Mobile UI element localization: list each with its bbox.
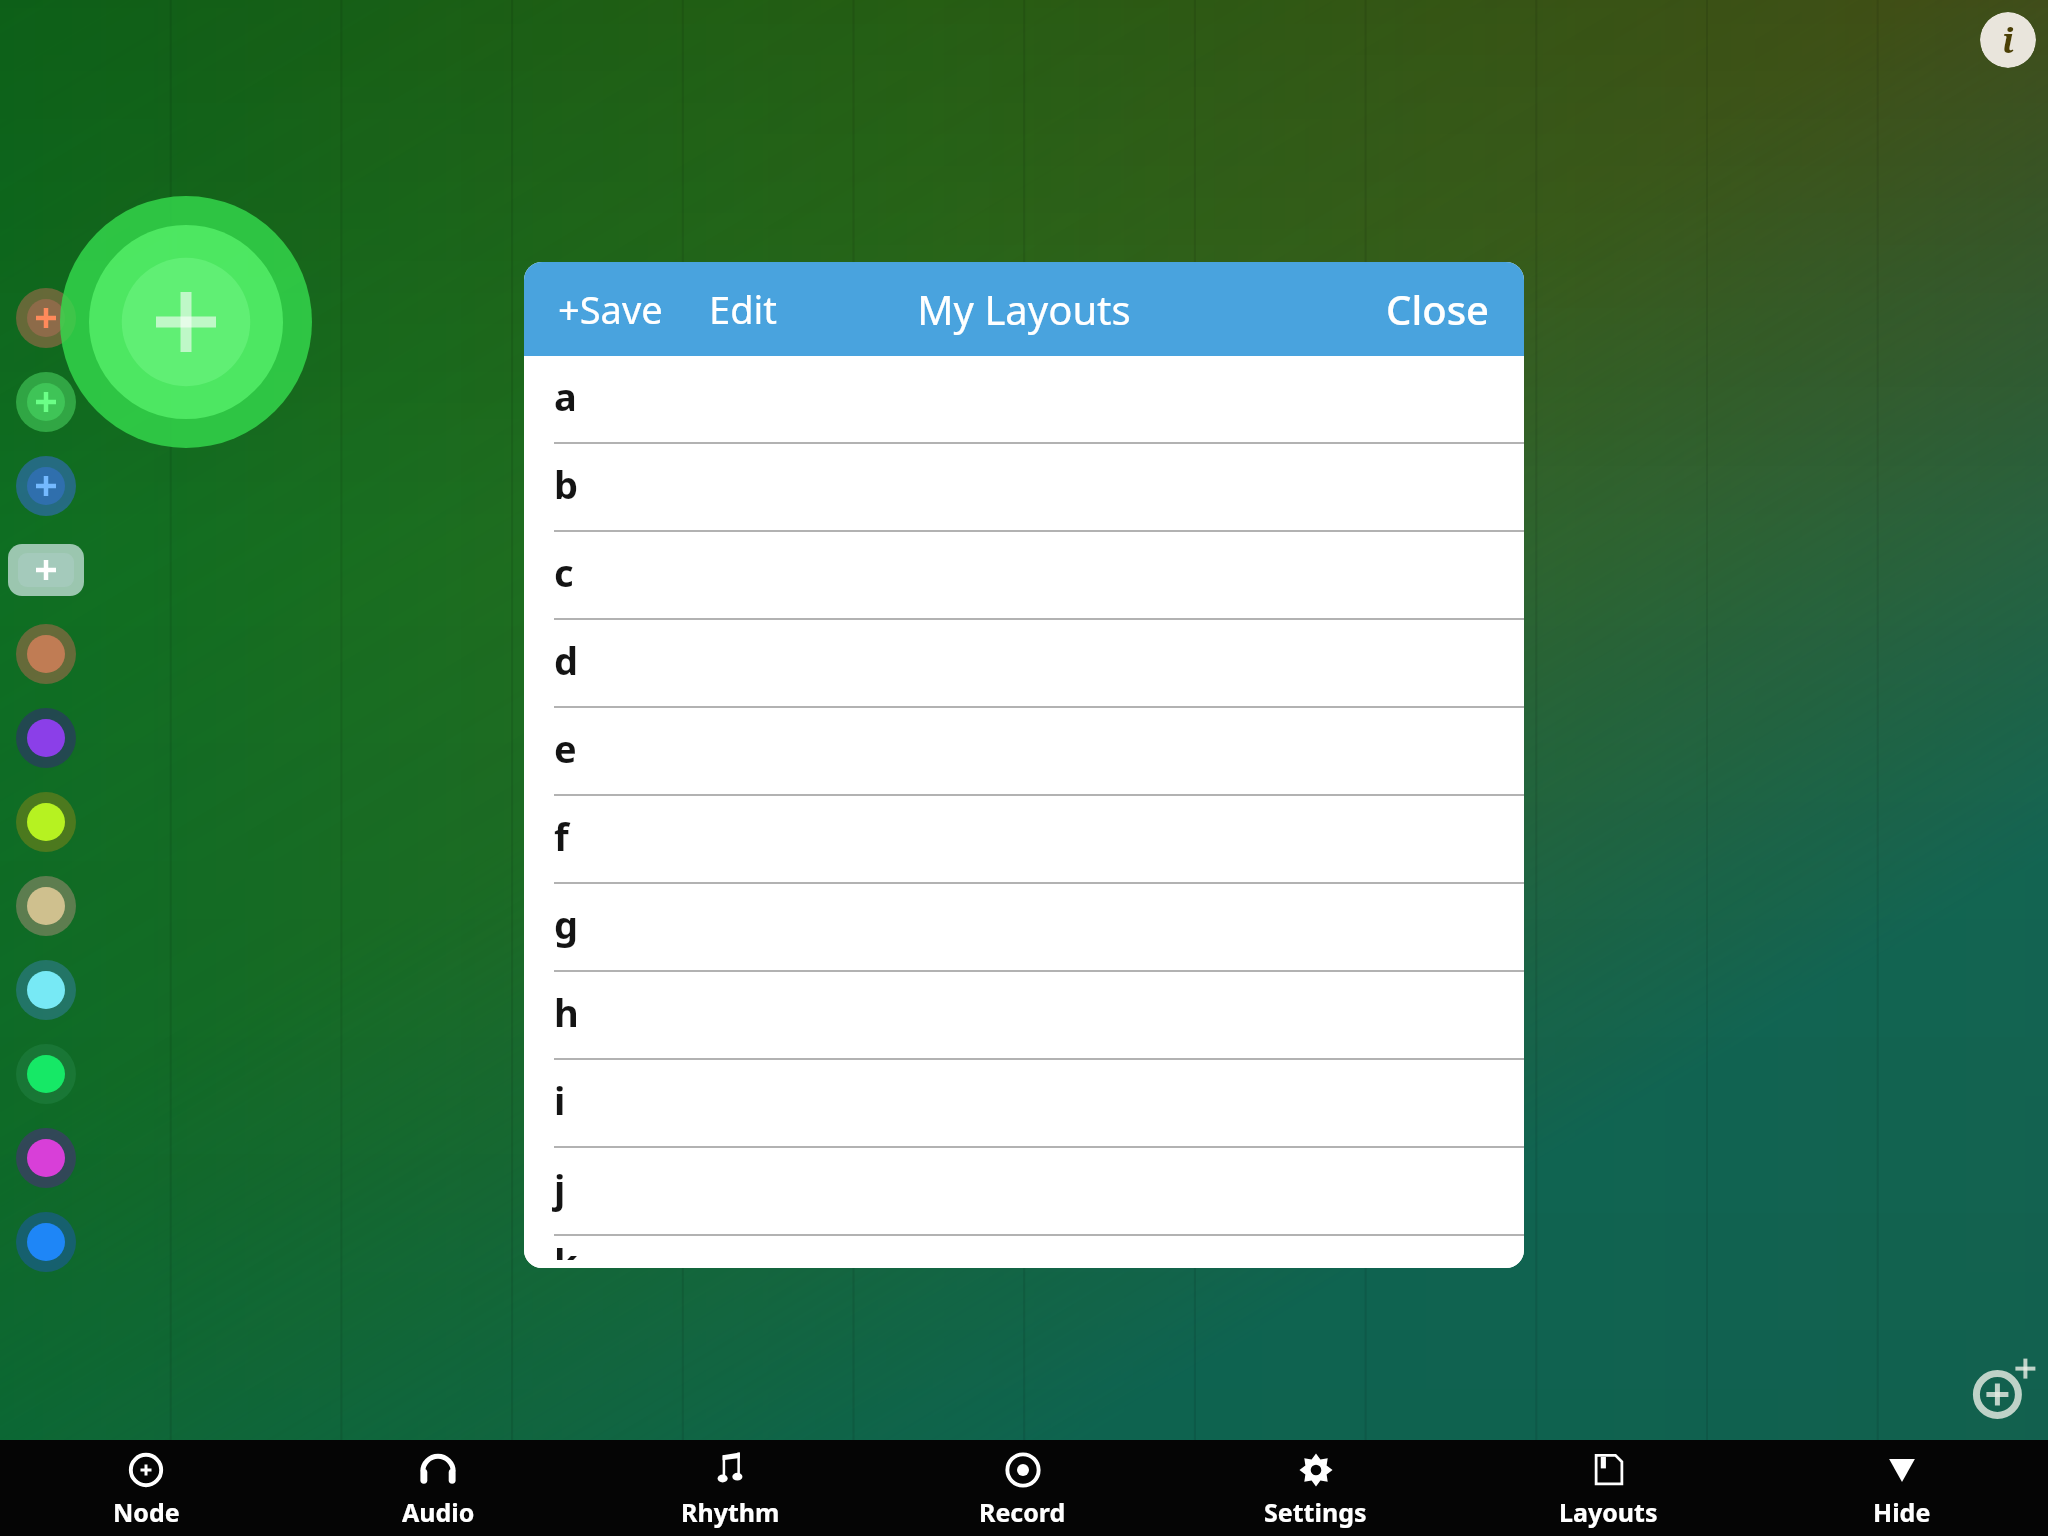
button[interactable]: Node 1 (2, 276, 90, 360)
button[interactable]: Settings (1169, 1440, 1462, 1536)
button[interactable]: Node 8 (2, 864, 90, 948)
staticText: i (554, 1074, 566, 1126)
staticText: i (2002, 17, 2015, 63)
button[interactable]: Audio (292, 1440, 584, 1536)
staticText: j (554, 1162, 566, 1214)
button[interactable]: i (524, 1060, 1524, 1148)
button[interactable]: Node 4 (2, 528, 90, 612)
staticText: Rhythm (681, 1495, 780, 1529)
button[interactable]: Close (1378, 276, 1498, 342)
button[interactable]: e (524, 708, 1524, 796)
button[interactable]: Node 12 (2, 1200, 90, 1284)
staticText: Close (1386, 282, 1490, 336)
staticText: e (554, 722, 577, 774)
button[interactable]: d (524, 620, 1524, 708)
button[interactable]: Hide (1755, 1440, 2048, 1536)
button[interactable]: Active node (60, 196, 312, 448)
staticText: Hide (1873, 1495, 1931, 1529)
staticText: g (554, 898, 579, 950)
button[interactable]: Record (876, 1440, 1169, 1536)
button[interactable]: j (524, 1148, 1524, 1236)
button[interactable]: Info (1980, 12, 2036, 68)
button[interactable]: Node 5 (2, 612, 90, 696)
button[interactable]: Edit (701, 277, 786, 341)
button[interactable]: Node 7 (2, 780, 90, 864)
button[interactable]: Rhythm (584, 1440, 876, 1536)
staticText: d (554, 634, 579, 686)
staticText: Edit (709, 283, 778, 335)
staticText: Node (113, 1495, 180, 1529)
staticText: Audio (402, 1495, 475, 1529)
button[interactable]: +Save (550, 277, 671, 341)
button[interactable]: Node 11 (2, 1116, 90, 1200)
staticText: c (554, 546, 574, 598)
staticText: h (554, 986, 579, 1038)
button[interactable]: b (524, 444, 1524, 532)
button[interactable]: f (524, 796, 1524, 884)
staticText: a (554, 370, 577, 422)
staticText: Record (979, 1495, 1066, 1529)
button[interactable]: c (524, 532, 1524, 620)
button[interactable]: Node 3 (2, 444, 90, 528)
button[interactable]: a (524, 356, 1524, 444)
staticText: My Layouts (917, 282, 1131, 336)
staticText: k (554, 1236, 578, 1260)
button[interactable]: Layouts (1462, 1440, 1755, 1536)
staticText: Layouts (1559, 1495, 1658, 1529)
button[interactable]: Node (0, 1440, 292, 1536)
staticText: f (554, 810, 569, 862)
button[interactable]: Node 6 (2, 696, 90, 780)
button[interactable]: Node 10 (2, 1032, 90, 1116)
button[interactable]: h (524, 972, 1524, 1060)
staticText: +Save (558, 283, 663, 335)
button[interactable]: Node 9 (2, 948, 90, 1032)
staticText: Settings (1264, 1495, 1367, 1529)
button[interactable]: Node 2 (2, 360, 90, 444)
button[interactable]: Add node (1968, 1356, 2038, 1426)
staticText: b (554, 458, 579, 510)
button[interactable]: g (524, 884, 1524, 972)
button[interactable]: k (524, 1236, 1524, 1268)
